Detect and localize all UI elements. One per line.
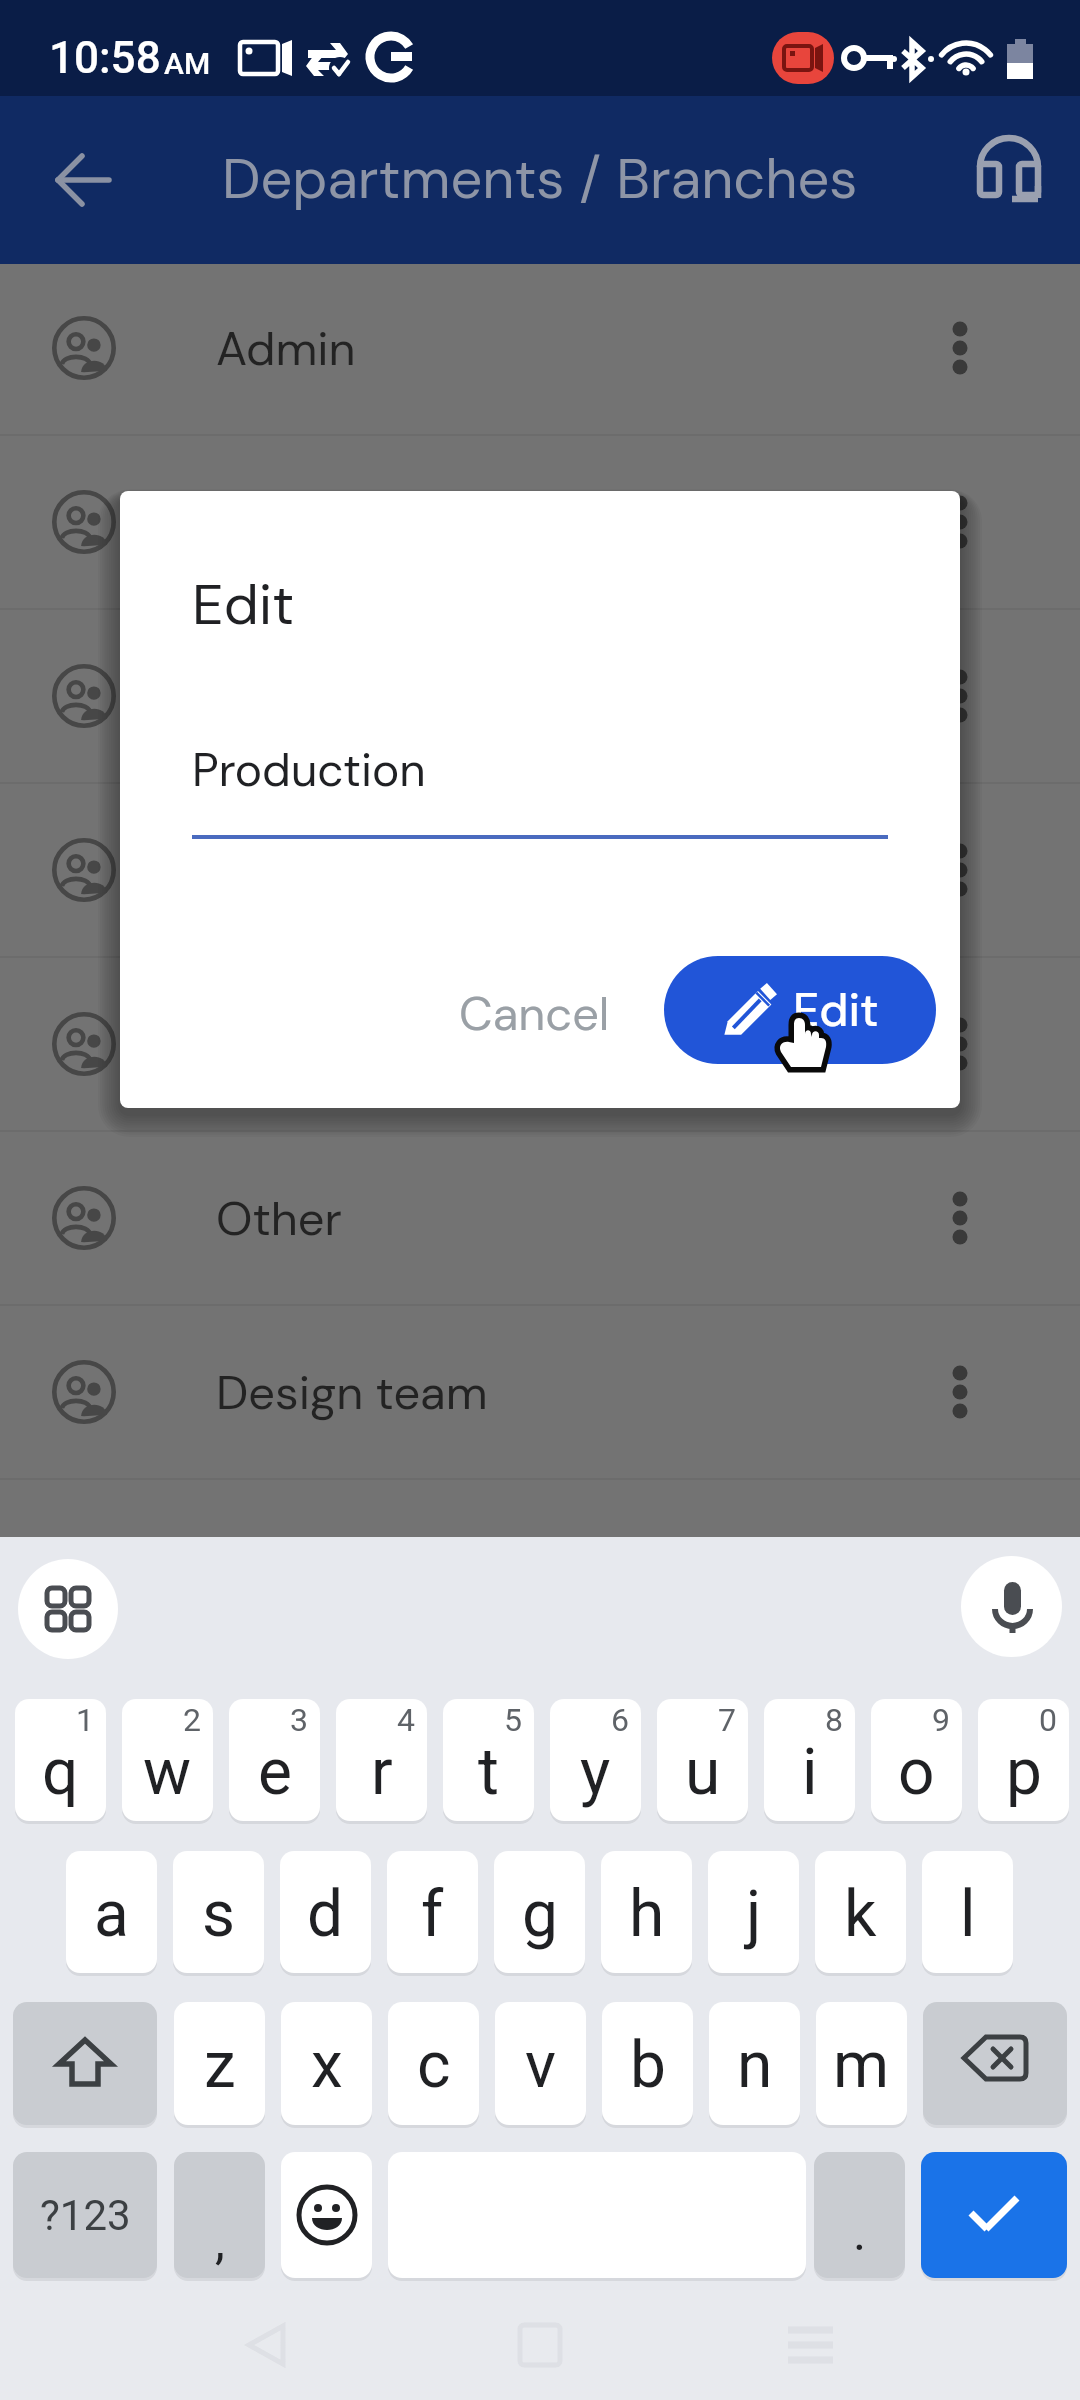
button[interactable]: Admin	[0, 262, 1080, 434]
button[interactable]: More options	[900, 1158, 1020, 1278]
staticText: 0	[1039, 1701, 1057, 1739]
button[interactable]: Marketing	[0, 784, 1080, 956]
staticText: ?123	[40, 2191, 131, 2240]
button[interactable]: More options	[900, 1332, 1020, 1452]
staticText: b	[630, 2028, 666, 2103]
button[interactable]: Other	[0, 1132, 1080, 1304]
staticText: 6	[611, 1701, 629, 1739]
button[interactable]: Design team	[0, 1306, 1080, 1478]
button[interactable]: Shift	[13, 2002, 157, 2125]
button[interactable]: More options	[900, 810, 1020, 930]
staticText: Other	[216, 1188, 342, 1249]
staticText: 8	[825, 1701, 843, 1739]
button[interactable]: g	[494, 1851, 585, 1973]
button[interactable]: p	[978, 1699, 1069, 1821]
button[interactable]: v	[495, 2002, 586, 2125]
staticText: Edit	[793, 980, 879, 1040]
button[interactable]: a	[66, 1851, 157, 1973]
button[interactable]: f	[387, 1851, 478, 1973]
staticText: d	[307, 1877, 344, 1952]
button[interactable]: Backspace	[923, 2002, 1067, 2125]
staticText: 2	[183, 1701, 201, 1739]
staticText: ,	[215, 2212, 225, 2271]
button[interactable]: k	[815, 1851, 906, 1973]
staticText: 9	[932, 1701, 950, 1739]
button[interactable]: b	[602, 2002, 693, 2125]
button[interactable]: j	[708, 1851, 799, 1973]
staticText: 10:58	[49, 32, 161, 84]
staticText: z	[204, 2028, 236, 2103]
staticText: 4	[397, 1701, 415, 1739]
button[interactable]: r	[336, 1699, 427, 1821]
button[interactable]: o	[871, 1699, 962, 1821]
staticText: g	[522, 1877, 558, 1952]
button[interactable]: More options	[900, 636, 1020, 756]
button[interactable]: m	[816, 2002, 907, 2125]
button[interactable]: Back	[36, 144, 132, 216]
staticText: t	[478, 1735, 499, 1810]
button[interactable]: i	[764, 1699, 855, 1821]
button[interactable]: Sales	[0, 436, 1080, 608]
staticText: p	[1006, 1735, 1042, 1810]
staticText: c	[417, 2028, 451, 2103]
button[interactable]: s	[173, 1851, 264, 1973]
staticText: o	[898, 1735, 935, 1810]
staticText: n	[737, 2028, 773, 2103]
button[interactable]: More options	[900, 288, 1020, 408]
button[interactable]: q	[15, 1699, 106, 1821]
button[interactable]: e	[229, 1699, 320, 1821]
button[interactable]: Support	[0, 610, 1080, 782]
button[interactable]: u	[657, 1699, 748, 1821]
staticText: .	[853, 2204, 867, 2263]
button[interactable]: d	[280, 1851, 371, 1973]
button[interactable]: Edit	[664, 956, 936, 1064]
staticText: w	[143, 1735, 192, 1810]
staticText: a	[94, 1877, 129, 1952]
staticText: 1	[76, 1701, 94, 1739]
staticText: f	[421, 1877, 444, 1952]
button[interactable]: More options	[900, 462, 1020, 582]
staticText: s	[202, 1877, 236, 1952]
staticText: m	[833, 2028, 890, 2103]
button[interactable]: t	[443, 1699, 534, 1821]
button[interactable]: y	[550, 1699, 641, 1821]
button[interactable]: z	[174, 2002, 265, 2125]
button[interactable]: h	[601, 1851, 692, 1973]
staticText: y	[580, 1735, 611, 1810]
button[interactable]: Support	[964, 122, 1060, 218]
button[interactable]: Production	[0, 958, 1080, 1130]
staticText: Departments / Branches	[222, 142, 858, 215]
staticText: l	[960, 1877, 976, 1952]
button[interactable]: c	[388, 2002, 479, 2125]
button[interactable]: Clipboard	[18, 1559, 118, 1659]
staticText: Admin	[216, 318, 356, 379]
button[interactable]: Emoji	[281, 2152, 372, 2278]
button[interactable]: Cancel	[422, 963, 647, 1063]
button[interactable]: More options	[900, 984, 1020, 1104]
staticText: k	[844, 1877, 877, 1952]
staticText: Edit	[192, 568, 295, 641]
button[interactable]: n	[709, 2002, 800, 2125]
staticText: Cancel	[459, 983, 610, 1044]
button[interactable]: Period	[814, 2152, 905, 2278]
button[interactable]: Symbols	[13, 2152, 157, 2278]
staticText: 5	[504, 1701, 522, 1739]
button[interactable]: l	[922, 1851, 1013, 1973]
staticText: 7	[718, 1701, 736, 1739]
button[interactable]: x	[281, 2002, 372, 2125]
staticText: j	[746, 1877, 762, 1952]
button[interactable]: w	[122, 1699, 213, 1821]
button[interactable]: Voice input	[961, 1556, 1062, 1657]
staticText: e	[258, 1735, 292, 1810]
staticText: 3	[290, 1701, 308, 1739]
staticText: AM	[164, 46, 211, 81]
button[interactable]: Comma	[174, 2152, 265, 2278]
button[interactable]: Enter	[921, 2152, 1067, 2278]
